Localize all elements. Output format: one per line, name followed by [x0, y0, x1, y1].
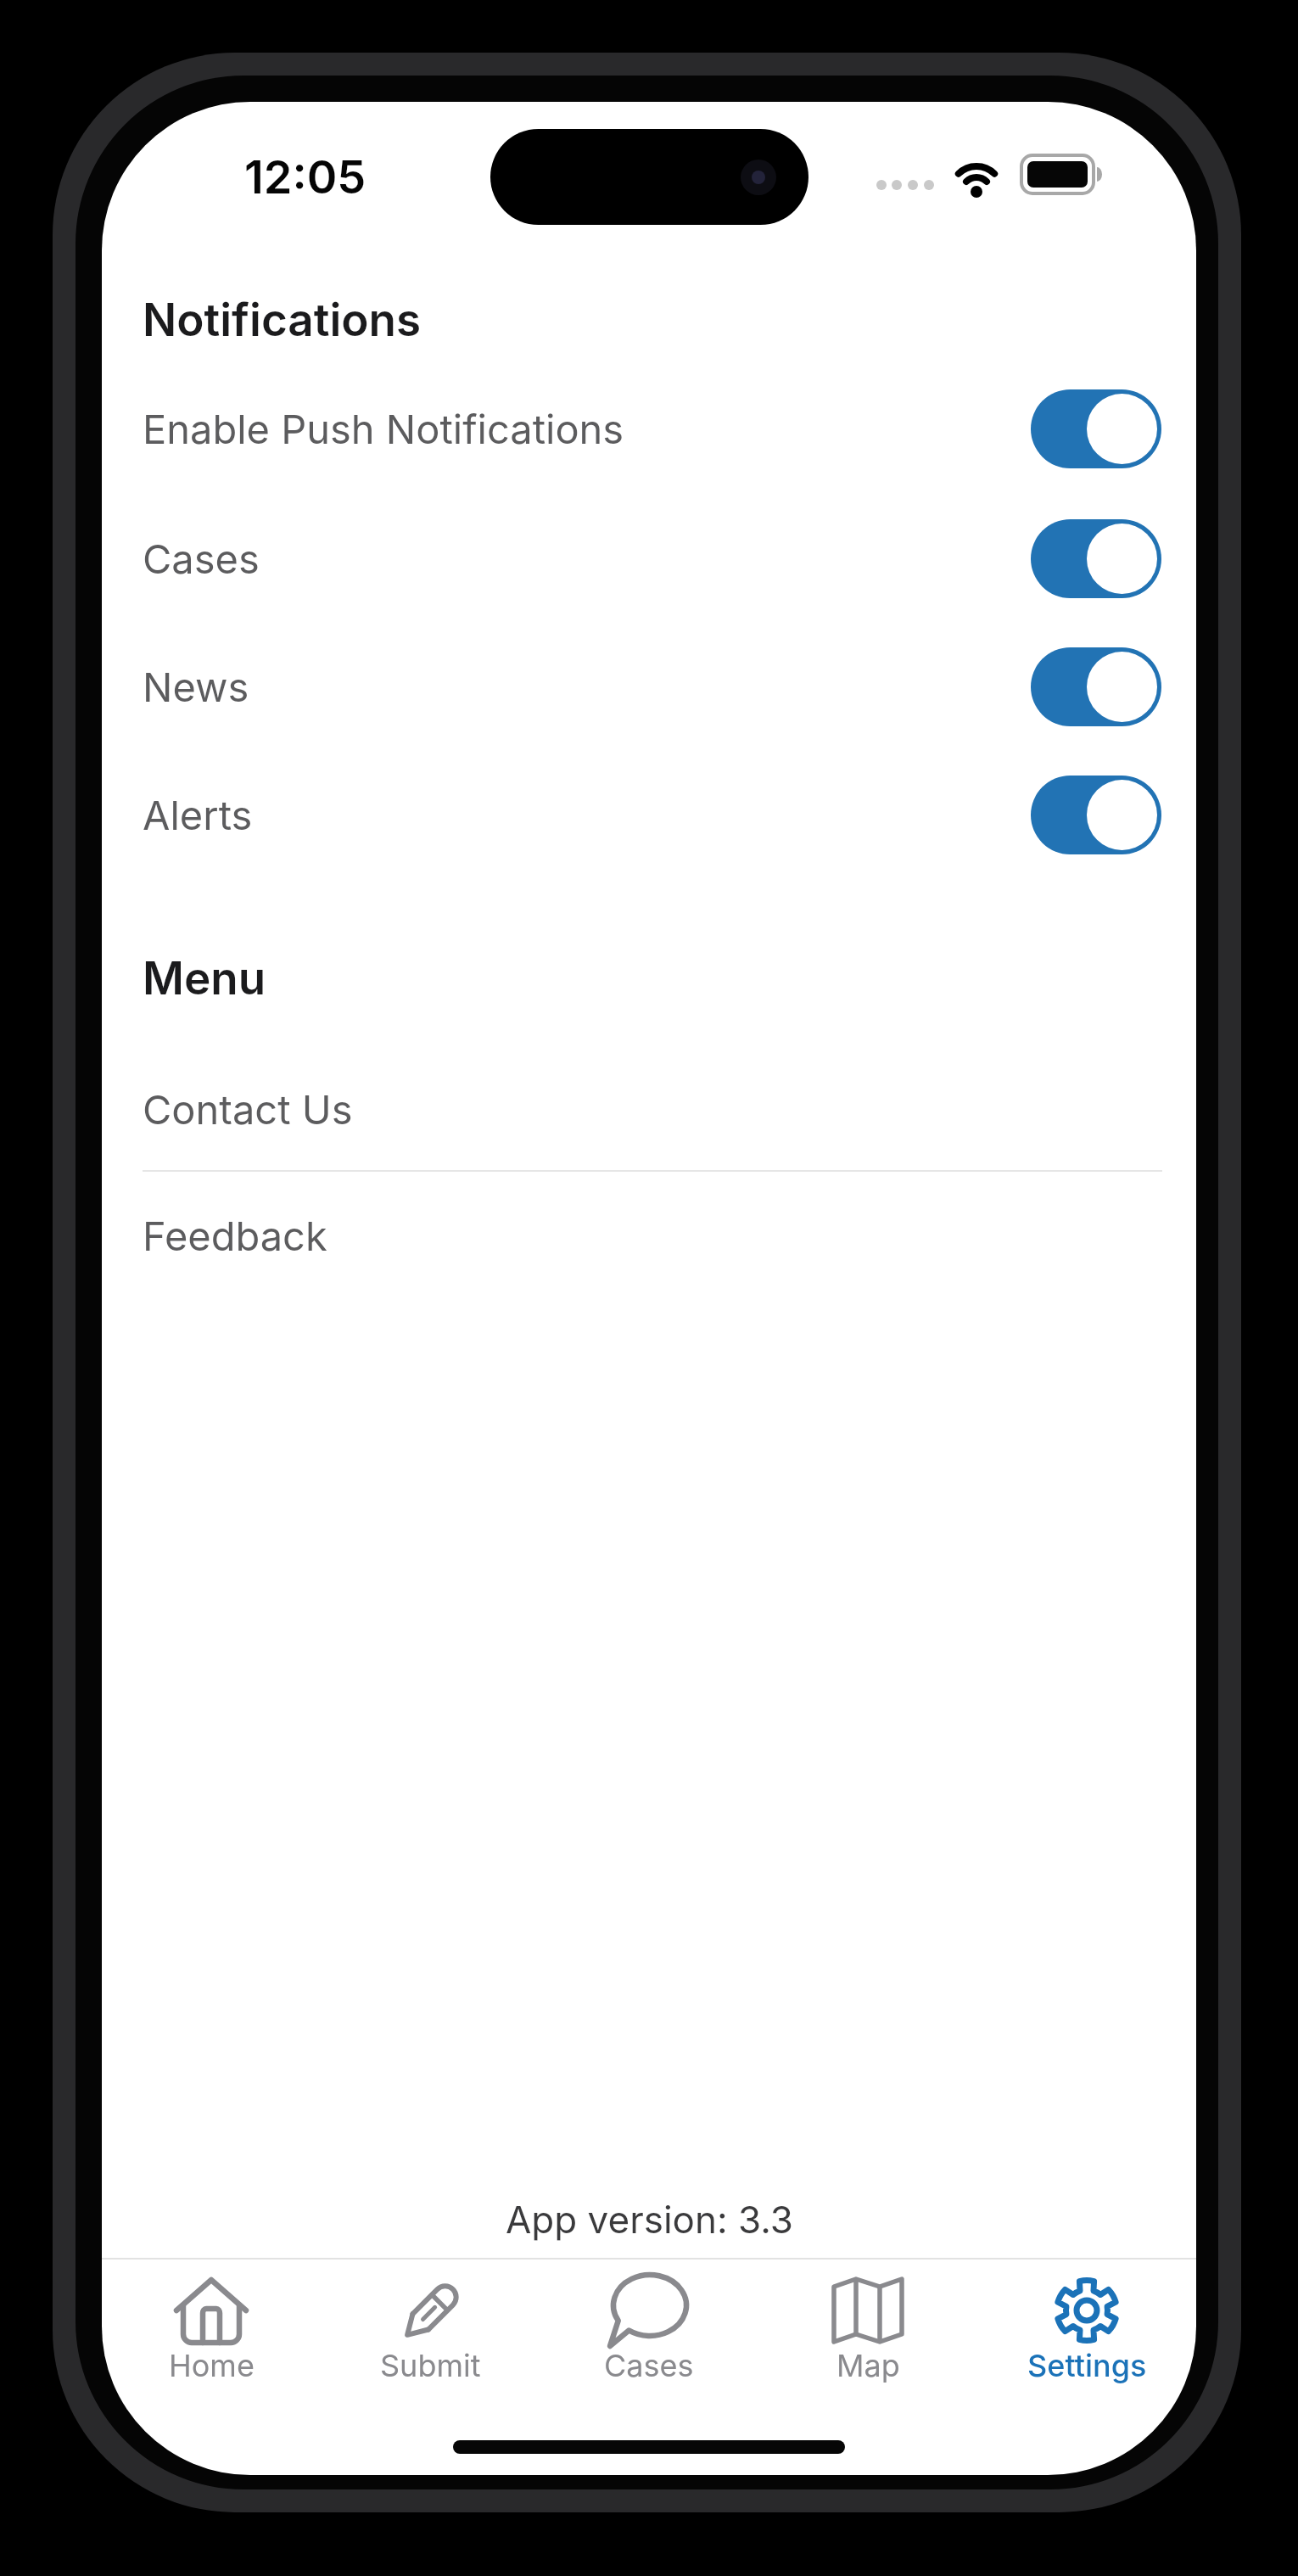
button[interactable]: Map — [758, 2260, 977, 2439]
button[interactable]: Settings — [977, 2260, 1196, 2439]
staticText: Notifications — [143, 293, 422, 347]
button[interactable]: Home — [102, 2260, 321, 2439]
staticText: Map — [836, 2347, 900, 2384]
staticText: 12:05 — [244, 149, 366, 204]
staticText: Enable Push Notifications — [143, 405, 624, 453]
button[interactable]: Cases — [102, 495, 1196, 622]
staticText: Home — [169, 2347, 255, 2384]
staticText: Feedback — [143, 1212, 327, 1260]
staticText: Menu — [143, 951, 266, 1005]
staticText: News — [143, 663, 249, 711]
button[interactable]: Enable Push Notifications — [102, 365, 1196, 492]
button[interactable]: News — [102, 623, 1196, 750]
staticText: Cases — [604, 2347, 694, 2384]
staticText: Contact Us — [143, 1085, 353, 1134]
button[interactable]: Contact Us — [102, 1048, 1196, 1171]
staticText: Submit — [380, 2347, 481, 2384]
staticText: Alerts — [143, 791, 253, 839]
staticText: Cases — [143, 535, 260, 583]
button[interactable]: Submit — [321, 2260, 540, 2439]
button[interactable]: Feedback — [102, 1172, 1196, 1299]
staticText: Settings — [1027, 2347, 1147, 2384]
button[interactable]: Cases — [540, 2260, 758, 2439]
button[interactable]: Alerts — [102, 751, 1196, 878]
staticText: App version: 3.3 — [506, 2197, 793, 2242]
